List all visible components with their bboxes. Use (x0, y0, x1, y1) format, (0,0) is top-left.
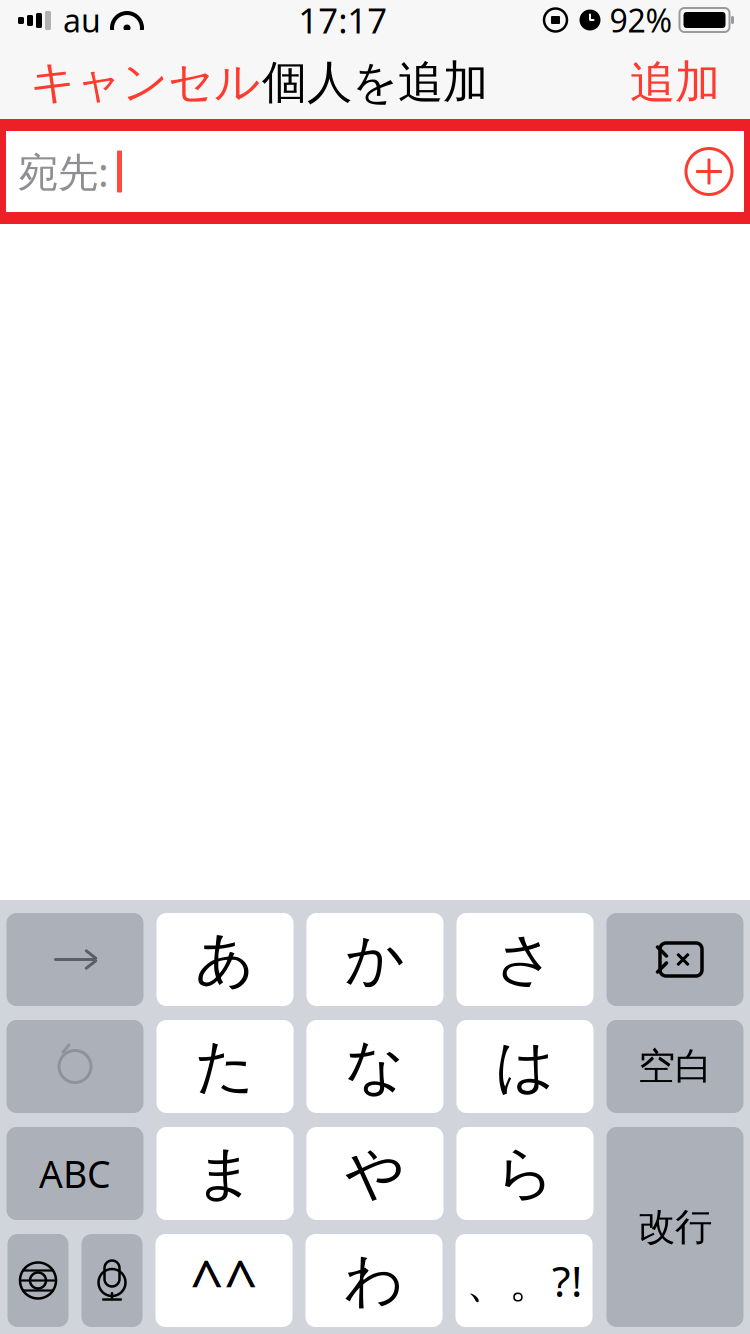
staticText: わ (344, 1244, 404, 1317)
button[interactable]: ま (156, 1127, 293, 1220)
staticText: 17:17 (298, 0, 387, 43)
button[interactable]: 改行 (606, 1127, 743, 1327)
staticText: 追加 (630, 55, 720, 110)
staticText: 宛先: (18, 145, 109, 198)
button[interactable]: わ (305, 1234, 442, 1327)
button[interactable]: 次のキーボード (7, 1234, 68, 1327)
staticText: は (495, 1030, 555, 1103)
staticText: キャンセル (30, 55, 260, 110)
button[interactable]: あ (156, 913, 293, 1006)
staticText: ま (195, 1137, 255, 1210)
button[interactable]: さ (456, 913, 593, 1006)
staticText: 個人を追加 (262, 55, 488, 110)
button[interactable]: か (306, 913, 443, 1006)
button[interactable]: ABC (6, 1127, 143, 1220)
staticText: 改行 (638, 1204, 712, 1250)
button[interactable]: な (306, 1020, 443, 1113)
button[interactable]: は (456, 1020, 593, 1113)
button[interactable]: 空白 (606, 1020, 743, 1113)
staticText: 、。?! (466, 1252, 582, 1309)
button[interactable] (6, 913, 143, 1006)
button[interactable]: キャンセル (14, 41, 276, 124)
button[interactable]: た (156, 1020, 293, 1113)
button[interactable]: 追加 (614, 41, 736, 124)
button[interactable]: ^^ (155, 1234, 292, 1327)
staticText: あ (195, 923, 255, 996)
button[interactable] (606, 913, 743, 1006)
staticText: さ (495, 923, 555, 996)
button[interactable]: や (306, 1127, 443, 1220)
staticText: ABC (39, 1149, 111, 1198)
staticText: た (195, 1030, 255, 1103)
button[interactable]: 音声入力 (81, 1234, 142, 1327)
staticText: 92% (609, 0, 672, 41)
button[interactable] (6, 1020, 143, 1113)
button[interactable]: 連絡先を追加 (678, 140, 740, 202)
staticText: 空白 (638, 1044, 712, 1089)
staticText: ら (495, 1137, 555, 1210)
staticText: au (63, 0, 101, 41)
staticText: ^^ (190, 1241, 258, 1319)
staticText: か (345, 923, 405, 996)
button[interactable]: ら (456, 1127, 593, 1220)
staticText: や (345, 1137, 405, 1210)
button[interactable]: 、。?! (455, 1234, 592, 1327)
staticText: な (345, 1030, 405, 1103)
